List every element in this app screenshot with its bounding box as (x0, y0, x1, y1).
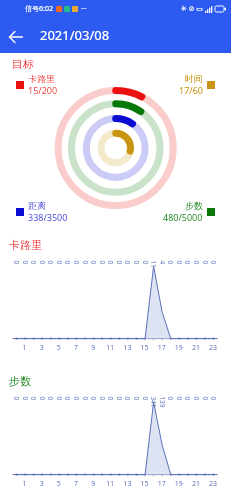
button[interactable]: Back (4, 25, 28, 49)
staticText: 信号6:02 (25, 4, 53, 14)
staticText: 步数 (185, 200, 203, 211)
staticText: 2021/03/08 (40, 26, 110, 44)
staticText: 480/5000 (163, 211, 203, 223)
staticText: 目标 (12, 57, 34, 71)
staticText: 距离 (28, 200, 46, 211)
staticText: 卡路里 (28, 73, 55, 84)
staticText: 17/60 (179, 84, 203, 96)
staticText: 338/3500 (28, 211, 68, 223)
staticText: 卡路里 (9, 238, 42, 252)
staticText: ✳ ⊘ ▭ (181, 4, 205, 14)
staticText: 步数 (9, 374, 31, 388)
staticText: 时间 (185, 73, 203, 84)
staticText: 15/200 (28, 84, 58, 96)
staticText: ··· (81, 4, 87, 14)
